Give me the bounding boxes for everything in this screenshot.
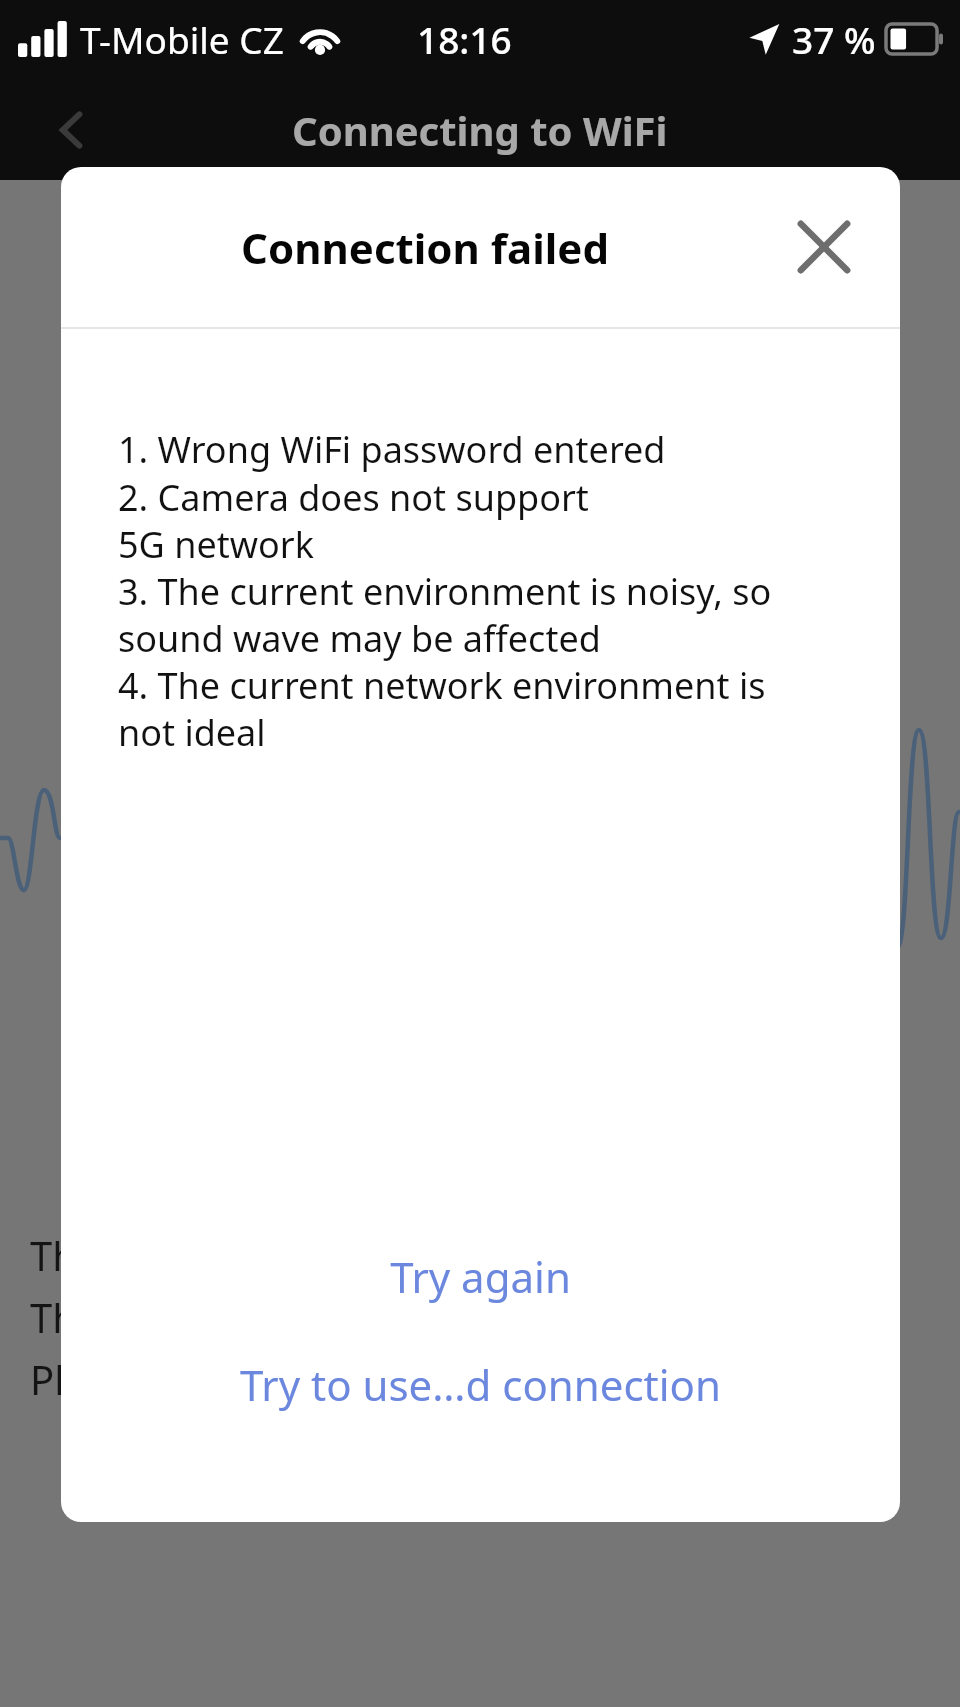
- button[interactable]: Close: [776, 199, 872, 295]
- staticText: Th: [30, 1290, 77, 1344]
- button[interactable]: Try again: [61, 1224, 900, 1328]
- staticText: 18:16: [417, 14, 512, 64]
- button[interactable]: Try to use…d connection: [61, 1328, 900, 1440]
- staticText: Try to use…d connection: [240, 1356, 721, 1413]
- staticText: Th: [30, 1228, 77, 1282]
- staticText: 1. Wrong WiFi password entered 2. Camera…: [118, 425, 772, 756]
- staticText: Connection failed: [241, 219, 609, 276]
- staticText: Pl: [30, 1352, 65, 1406]
- button[interactable]: Back: [30, 88, 114, 172]
- staticText: T-Mobile CZ: [80, 14, 284, 64]
- staticText: Try again: [390, 1248, 571, 1305]
- staticText: 37 %: [792, 14, 876, 64]
- staticText: Connecting to WiFi: [292, 103, 668, 157]
